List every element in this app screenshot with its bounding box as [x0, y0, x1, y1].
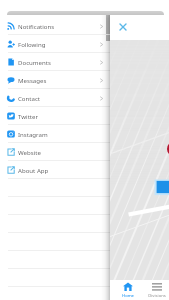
staticText: Documents — [18, 58, 51, 66]
staticText: Contact — [18, 94, 41, 102]
staticText: Website — [18, 148, 41, 156]
staticText: About App — [18, 166, 49, 174]
button[interactable]: Notifications — [0, 17, 106, 35]
button[interactable]: Contact — [0, 89, 106, 107]
staticText: Home — [122, 293, 134, 299]
staticText: Twitter — [18, 112, 38, 120]
staticText: Instagram — [18, 130, 48, 138]
button[interactable]: Twitter — [0, 107, 106, 125]
button[interactable]: About App — [0, 161, 106, 179]
staticText: Notifications — [18, 22, 55, 30]
button[interactable]: Close — [116, 20, 130, 34]
button[interactable]: Documents — [0, 53, 106, 71]
button[interactable]: Instagram — [0, 125, 106, 143]
button[interactable]: Divisions — [145, 280, 169, 300]
staticText: Messages — [18, 76, 47, 84]
button[interactable]: Website — [0, 143, 106, 161]
button[interactable]: Following — [0, 35, 106, 53]
staticText: Divisions — [148, 293, 166, 299]
button[interactable]: Home — [110, 280, 145, 300]
staticText: Following — [18, 40, 46, 48]
button[interactable]: Messages — [0, 71, 106, 89]
